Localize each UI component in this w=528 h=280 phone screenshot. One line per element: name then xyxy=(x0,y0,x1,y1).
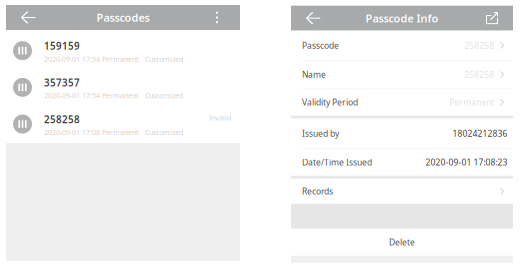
staticText: 258258 xyxy=(464,69,494,80)
staticText: Date/Time Issued xyxy=(302,156,372,168)
staticText: Invalid xyxy=(209,113,231,122)
button[interactable]: Share xyxy=(480,6,504,31)
button[interactable]: 258258 xyxy=(6,103,240,140)
staticText: Delete xyxy=(389,236,415,248)
staticText: 258258 xyxy=(44,113,80,126)
button[interactable]: Issued by xyxy=(291,119,513,148)
staticText: Issued by xyxy=(302,127,339,139)
staticText: 2020-09-01 17:08:23 xyxy=(425,156,507,168)
staticText: Name xyxy=(302,69,326,80)
staticText: 258258 xyxy=(464,40,494,51)
staticText: 159159 xyxy=(44,39,80,53)
button[interactable]: Delete xyxy=(291,229,513,256)
staticText: Passcodes xyxy=(96,10,149,25)
button[interactable]: Passcode xyxy=(291,31,513,60)
staticText: 18024212836 xyxy=(452,127,507,139)
button[interactable]: Records xyxy=(291,179,513,204)
button[interactable]: Back xyxy=(300,6,326,31)
staticText: 2020-09-01 17:54 Permanent Customized xyxy=(44,91,183,100)
staticText: Passcode Info xyxy=(365,11,438,26)
button[interactable]: 357357 xyxy=(6,67,240,103)
button[interactable]: Back xyxy=(15,5,41,30)
button[interactable]: Name xyxy=(291,61,513,88)
staticText: 2020-09-01 17:08 Permanent Customized xyxy=(44,127,183,137)
button[interactable]: 159159 xyxy=(6,30,240,67)
button[interactable]: Date/Time Issued xyxy=(291,149,513,176)
staticText: Validity Period xyxy=(302,96,358,108)
staticText: Permanent xyxy=(449,96,494,108)
staticText: Records xyxy=(302,185,333,197)
staticText: 357357 xyxy=(44,76,80,89)
button[interactable]: More options xyxy=(203,5,231,30)
staticText: Passcode xyxy=(302,40,339,51)
button[interactable]: Validity Period xyxy=(291,89,513,116)
staticText: 2020-09-01 17:54 Permanent Customized xyxy=(44,54,183,64)
